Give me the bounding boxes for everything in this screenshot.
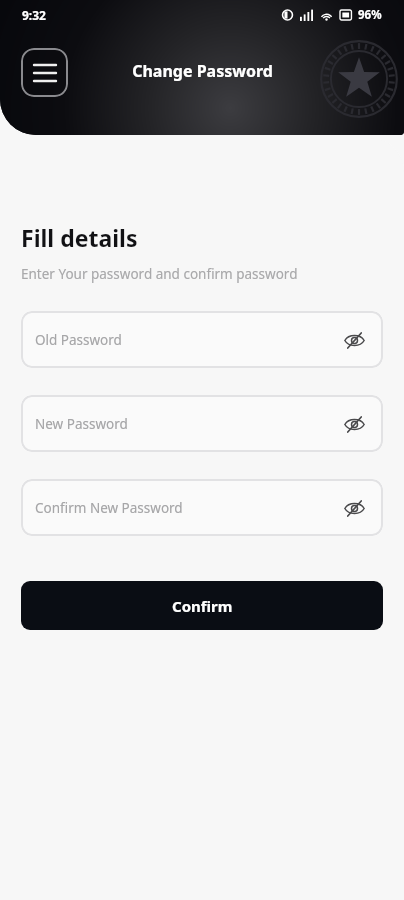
button[interactable]: Show password — [341, 495, 367, 521]
button[interactable]: Confirm New Password — [21, 479, 383, 536]
button[interactable]: New Password — [21, 395, 383, 452]
staticText: 9:32 — [22, 7, 46, 23]
staticText: Enter Your password and confirm password — [21, 265, 298, 283]
button[interactable]: Show password — [341, 327, 367, 353]
staticText: Fill details — [21, 222, 138, 253]
button[interactable]: Star Oil Filling Station logo — [320, 40, 398, 118]
staticText: Confirm New Password — [35, 499, 341, 517]
staticText: Old Password — [35, 331, 341, 349]
button[interactable]: Show password — [341, 411, 367, 437]
button[interactable]: Menu — [21, 48, 68, 97]
button[interactable]: Confirm — [21, 581, 383, 630]
staticText: Confirm — [172, 596, 233, 616]
staticText: 96% — [358, 7, 382, 23]
staticText: New Password — [35, 415, 341, 433]
staticText: Change Password — [132, 60, 273, 82]
button[interactable]: Old Password — [21, 311, 383, 368]
